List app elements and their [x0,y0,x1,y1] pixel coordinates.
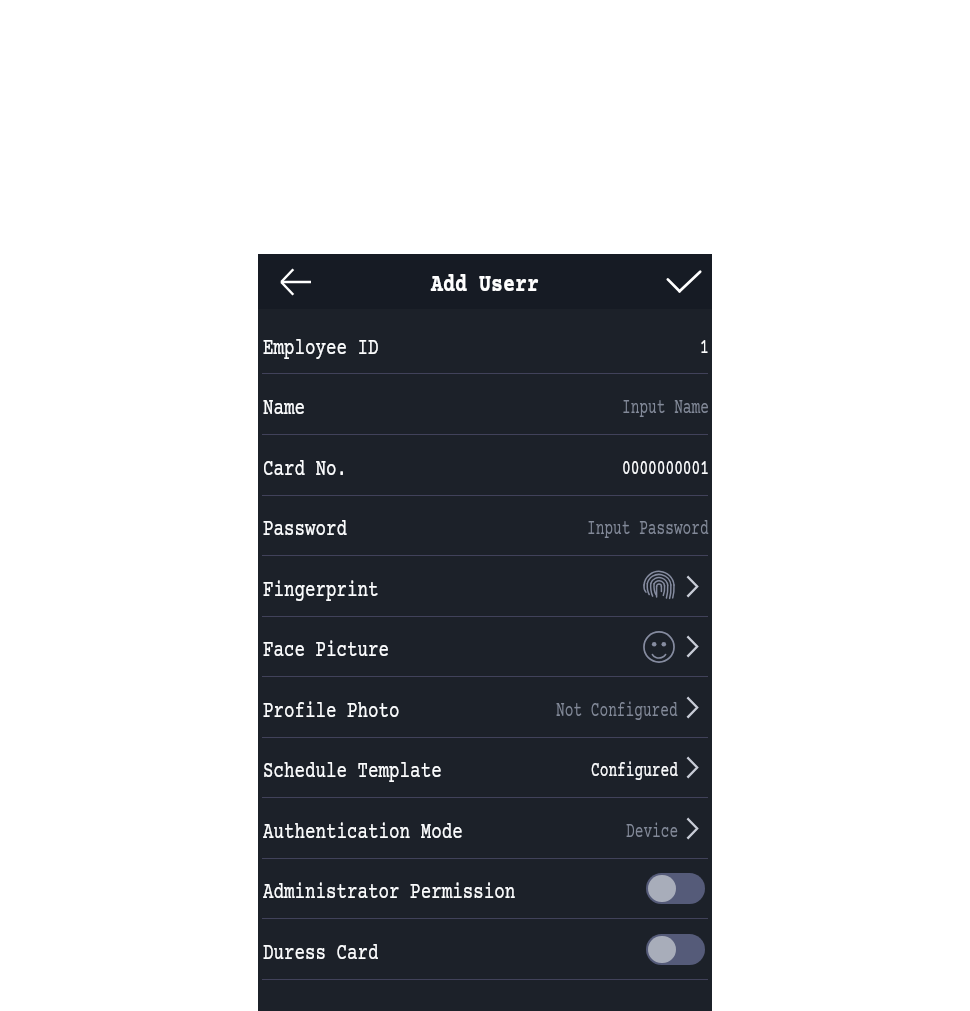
staticText: Password [263,517,348,543]
staticText: Add Userr [431,271,540,300]
button[interactable]: Profile Photo [258,677,712,738]
staticText: Employee ID [263,336,379,362]
button[interactable]: Administrator Permission [258,858,712,919]
button[interactable]: Card No. [258,435,712,496]
button[interactable]: Schedule Template [258,737,712,798]
button[interactable]: Authentication Mode [258,798,712,859]
button[interactable]: Toggle [646,873,705,904]
other: Fingerprint [643,572,675,604]
button[interactable]: Toggle [646,934,705,965]
button[interactable]: Face Picture [258,616,712,677]
staticText: Fingerprint [263,578,379,604]
staticText: Schedule Template [263,759,442,785]
staticText: Face Picture [263,638,389,664]
staticText: Input Name [622,397,709,421]
staticText: Not Configured [556,700,678,724]
staticText: Administrator Permission [263,880,515,906]
button[interactable]: Back [258,254,324,309]
button[interactable]: Employee ID [258,309,712,374]
staticText: Name [263,396,306,422]
button[interactable]: Password [258,495,712,556]
staticText: Configured [591,760,678,784]
button[interactable]: Duress Card [258,919,712,980]
button[interactable]: Name [258,374,712,435]
staticText: Duress Card [263,941,379,967]
button[interactable]: Fingerprint [258,556,712,617]
button[interactable]: Confirm [646,254,712,309]
staticText: Card No. [263,457,348,483]
staticText: Profile Photo [263,699,400,725]
staticText: Input Password [587,518,709,542]
staticText: 1 [700,337,709,361]
other: Face picture [643,631,675,663]
staticText: Device [626,821,678,845]
staticText: Authentication Mode [263,820,463,846]
staticText: 0000000001 [622,458,709,482]
